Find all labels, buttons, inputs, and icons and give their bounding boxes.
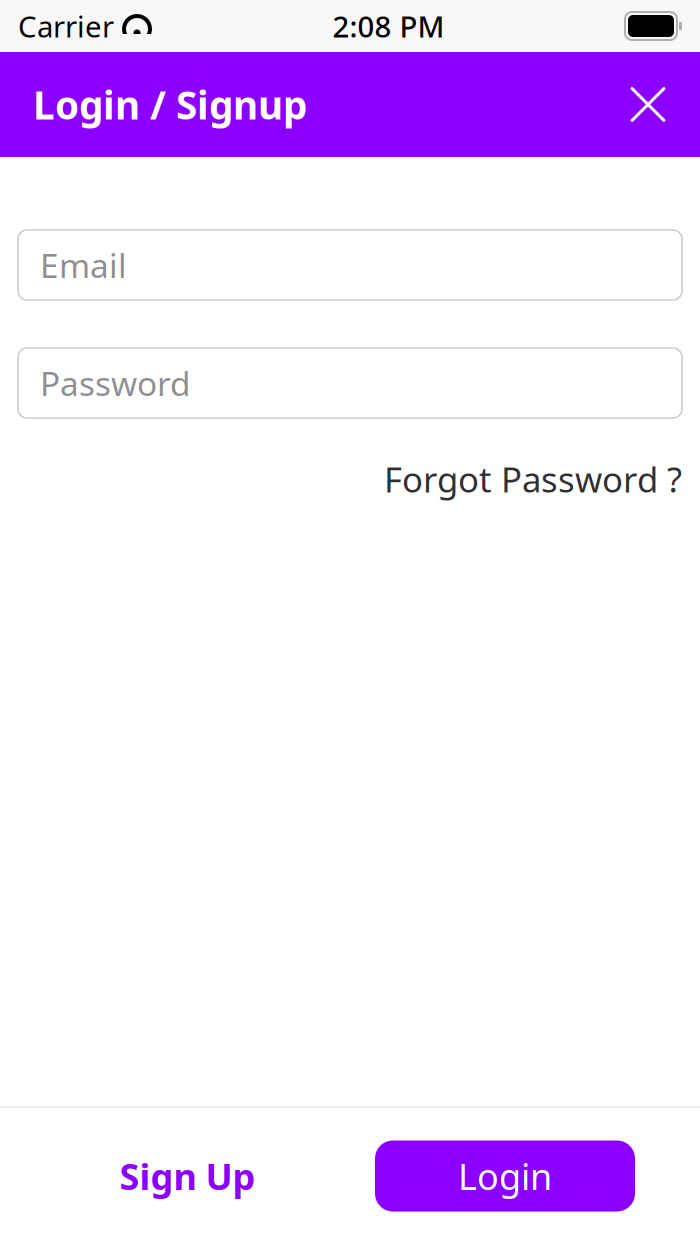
button[interactable]: Login xyxy=(375,1140,635,1211)
staticText: Sign Up xyxy=(119,1152,255,1200)
staticText: Email xyxy=(40,243,127,287)
staticText: Login xyxy=(458,1152,552,1200)
button[interactable]: Password xyxy=(0,348,700,418)
button[interactable]: Email xyxy=(0,230,700,300)
button[interactable]: Forgot Password ? xyxy=(384,456,682,502)
button[interactable]: Sign Up xyxy=(0,1108,375,1244)
button[interactable]: Close xyxy=(616,72,680,136)
staticText: Carrier xyxy=(18,6,114,45)
staticText: Password xyxy=(40,361,191,405)
staticText: 2:08 PM xyxy=(332,6,444,45)
staticText: Login / Signup xyxy=(33,79,307,130)
staticText: Forgot Password ? xyxy=(384,456,682,502)
